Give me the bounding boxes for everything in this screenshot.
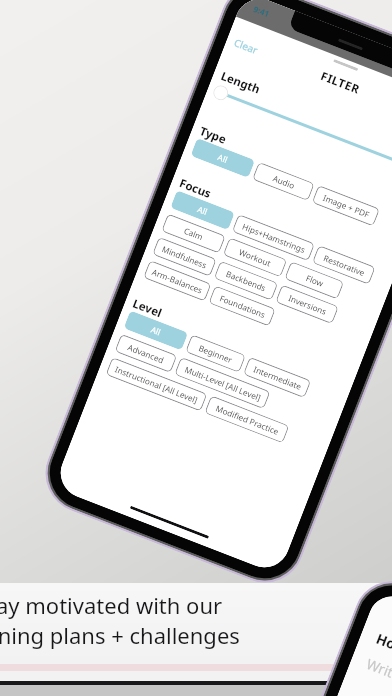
- button[interactable]: Clear: [232, 35, 260, 57]
- staticText: 9:41: [252, 3, 271, 19]
- button[interactable]: Multi-Level [All Level]: [174, 357, 271, 409]
- button[interactable]: All: [170, 190, 235, 230]
- staticText: Instructional [All Level]: [113, 363, 199, 405]
- button[interactable]: Calm: [161, 213, 226, 253]
- staticText: Restorative: [322, 252, 367, 278]
- staticText: Workout: [237, 246, 273, 269]
- staticText: FILTER: [318, 68, 362, 98]
- button[interactable]: Flow: [284, 261, 344, 299]
- staticText: Hips+Hamstrings: [241, 221, 307, 255]
- button[interactable]: Workout: [223, 237, 287, 277]
- button[interactable]: Length slider: [211, 83, 230, 102]
- staticText: All: [216, 151, 229, 165]
- staticText: Modified Practice: [214, 402, 280, 437]
- staticText: How are you feeling?: [374, 629, 392, 696]
- button[interactable]: Inversions: [275, 284, 339, 324]
- staticText: ay motivated with our: [0, 590, 223, 620]
- button[interactable]: Foundations: [208, 285, 276, 326]
- staticText: Foundations: [218, 292, 267, 320]
- staticText: Advanced: [126, 341, 166, 365]
- button[interactable]: Audio: [252, 162, 315, 201]
- staticText: Level: [130, 295, 164, 321]
- staticText: Write here...: [364, 654, 392, 696]
- button[interactable]: All: [124, 310, 188, 350]
- staticText: Focus: [177, 175, 214, 202]
- button[interactable]: Intermediate: [243, 357, 311, 398]
- staticText: Type: [197, 123, 229, 148]
- button[interactable]: Image + PDF: [312, 185, 380, 226]
- button[interactable]: Mindfulness: [152, 237, 217, 277]
- staticText: ining plans + challenges: [0, 620, 240, 650]
- staticText: Backbends: [224, 268, 267, 293]
- staticText: Inversions: [287, 292, 328, 317]
- staticText: Mindfulness: [160, 243, 209, 271]
- staticText: Calm: [182, 225, 205, 242]
- staticText: Image + PDF: [321, 192, 371, 220]
- staticText: Arm-Balances: [150, 266, 204, 296]
- staticText: All: [149, 323, 162, 337]
- staticText: Intermediate: [252, 363, 303, 392]
- button[interactable]: Backbends: [214, 261, 278, 301]
- staticText: Multi-Level [All Level]: [183, 363, 263, 403]
- button[interactable]: Restorative: [312, 245, 376, 285]
- staticText: Length: [219, 68, 263, 98]
- staticText: All: [196, 203, 209, 217]
- button[interactable]: Advanced: [114, 334, 177, 373]
- button[interactable]: Hips+Hamstrings: [232, 214, 315, 261]
- button[interactable]: Modified Practice: [204, 395, 289, 443]
- button[interactable]: All: [190, 138, 255, 178]
- staticText: Beginner: [197, 342, 234, 365]
- staticText: Flow: [304, 272, 325, 289]
- button[interactable]: Instructional [All Level]: [105, 357, 207, 412]
- button[interactable]: Arm-Balances: [143, 260, 211, 302]
- staticText: Audio: [271, 172, 297, 191]
- button[interactable]: Beginner: [185, 334, 246, 373]
